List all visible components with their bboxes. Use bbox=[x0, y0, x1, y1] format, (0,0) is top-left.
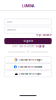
button[interactable]: LUMINA bbox=[0, 4, 56, 8]
button[interactable]: Continue with Apple bbox=[4, 71, 52, 77]
button[interactable]: Password bbox=[4, 27, 52, 33]
staticText: Sign in bbox=[23, 40, 32, 42]
staticText: Sign up bbox=[36, 45, 44, 48]
staticText: LUMINA bbox=[22, 4, 34, 8]
button[interactable]: Continue with Google bbox=[4, 57, 52, 63]
staticText: Continue with Apple bbox=[19, 72, 41, 75]
staticText: or bbox=[27, 51, 29, 53]
staticText: Don't have an account? bbox=[12, 45, 35, 48]
button[interactable]: Continue with Facebook bbox=[4, 64, 52, 70]
staticText: Continue with Google bbox=[19, 58, 42, 61]
staticText: Password bbox=[7, 29, 16, 31]
staticText: Continue with Facebook bbox=[18, 65, 42, 68]
button[interactable]: Sign in bbox=[4, 38, 52, 44]
button[interactable]: Email bbox=[4, 19, 52, 25]
button[interactable]: Sign up bbox=[36, 45, 44, 48]
staticText: Forgot password? bbox=[36, 34, 52, 37]
button[interactable]: Forgot password? bbox=[36, 34, 52, 37]
staticText: Email bbox=[7, 21, 13, 23]
